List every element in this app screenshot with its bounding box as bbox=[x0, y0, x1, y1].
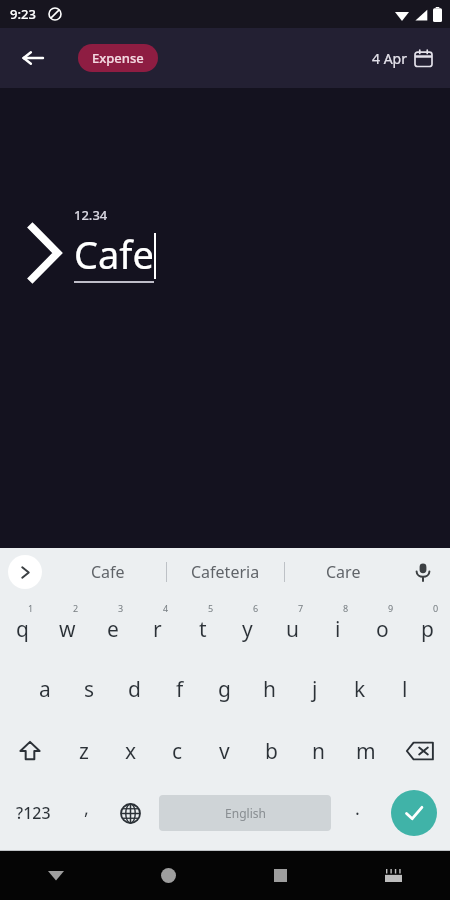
staticText: z bbox=[79, 737, 89, 766]
staticText: 3 bbox=[118, 602, 124, 614]
staticText: a bbox=[39, 675, 51, 704]
staticText: 7 bbox=[298, 602, 304, 614]
button[interactable]: v bbox=[201, 720, 248, 782]
button[interactable]: 4 Apr bbox=[368, 45, 436, 72]
button[interactable]: 2 bbox=[45, 596, 90, 658]
staticText: , bbox=[84, 796, 89, 821]
staticText: v bbox=[219, 737, 230, 766]
button[interactable]: Done bbox=[391, 790, 437, 836]
button[interactable]: Care bbox=[285, 548, 402, 596]
staticText: d bbox=[128, 675, 141, 704]
staticText: t bbox=[199, 615, 207, 644]
staticText: 5 bbox=[208, 602, 214, 614]
staticText: m bbox=[356, 737, 376, 766]
staticText: y bbox=[242, 615, 253, 644]
button[interactable]: Expense bbox=[78, 44, 158, 72]
staticText: g bbox=[218, 675, 231, 704]
button[interactable]: d bbox=[112, 658, 157, 720]
button[interactable]: a bbox=[22, 658, 67, 720]
staticText: k bbox=[354, 675, 366, 704]
staticText: l bbox=[402, 675, 408, 704]
button[interactable]: 4 bbox=[135, 596, 180, 658]
button[interactable]: Comma bbox=[66, 782, 107, 844]
button[interactable]: Voice input bbox=[406, 555, 440, 589]
button[interactable]: 6 bbox=[225, 596, 270, 658]
staticText: Cafe bbox=[91, 561, 125, 583]
staticText: Expense bbox=[92, 49, 144, 67]
button[interactable]: 3 bbox=[90, 596, 135, 658]
staticText: x bbox=[125, 737, 137, 766]
staticText: e bbox=[107, 615, 119, 644]
staticText: j bbox=[312, 675, 318, 704]
staticText: 2 bbox=[73, 602, 79, 614]
staticText: 4 bbox=[163, 602, 169, 614]
staticText: Care bbox=[326, 561, 361, 583]
staticText: o bbox=[376, 615, 389, 644]
button[interactable]: f bbox=[157, 658, 202, 720]
button[interactable]: x bbox=[107, 720, 154, 782]
button[interactable]: j bbox=[292, 658, 337, 720]
button[interactable]: Change language bbox=[107, 782, 153, 844]
staticText: . bbox=[355, 796, 360, 821]
button[interactable]: Cafeteria bbox=[167, 548, 284, 596]
button[interactable]: g bbox=[202, 658, 247, 720]
button[interactable]: 0 bbox=[405, 596, 450, 658]
button[interactable]: Shift bbox=[0, 720, 60, 782]
button[interactable]: 1 bbox=[0, 596, 45, 658]
staticText: w bbox=[59, 615, 76, 644]
button[interactable]: 5 bbox=[180, 596, 225, 658]
button[interactable]: k bbox=[337, 658, 382, 720]
staticText: s bbox=[84, 675, 95, 704]
button[interactable]: n bbox=[295, 720, 342, 782]
button[interactable]: Back bbox=[8, 34, 56, 82]
staticText: 0 bbox=[433, 602, 439, 614]
staticText: 4 Apr bbox=[372, 49, 407, 68]
staticText: 12.34 bbox=[74, 206, 108, 224]
button[interactable]: 8 bbox=[315, 596, 360, 658]
staticText: ?123 bbox=[16, 802, 51, 824]
button[interactable]: Backspace bbox=[389, 720, 450, 782]
button[interactable]: Recent apps bbox=[224, 850, 337, 900]
button[interactable]: Back bbox=[0, 850, 112, 900]
staticText: h bbox=[263, 675, 276, 704]
staticText: u bbox=[286, 615, 299, 644]
button[interactable]: b bbox=[248, 720, 295, 782]
staticText: Cafeteria bbox=[191, 561, 260, 583]
staticText: r bbox=[153, 615, 162, 644]
button[interactable]: s bbox=[67, 658, 112, 720]
button[interactable]: Expand suggestions bbox=[8, 555, 42, 589]
staticText: q bbox=[16, 615, 29, 644]
button[interactable]: Cafe bbox=[50, 548, 166, 596]
button[interactable]: h bbox=[247, 658, 292, 720]
button[interactable]: 9 bbox=[360, 596, 405, 658]
staticText: 9:23 bbox=[10, 5, 36, 23]
staticText: b bbox=[265, 737, 278, 766]
button[interactable]: 7 bbox=[270, 596, 315, 658]
button[interactable]: ?123 bbox=[0, 782, 66, 844]
button[interactable]: c bbox=[154, 720, 201, 782]
staticText: 1 bbox=[28, 602, 34, 614]
button[interactable]: Switch keyboard bbox=[337, 850, 450, 900]
button[interactable]: English bbox=[159, 795, 331, 831]
staticText: English bbox=[225, 805, 266, 821]
staticText: c bbox=[172, 737, 183, 766]
button[interactable]: m bbox=[342, 720, 389, 782]
staticText: p bbox=[421, 615, 434, 644]
staticText: i bbox=[335, 615, 341, 644]
staticText: n bbox=[312, 737, 325, 766]
staticText: 8 bbox=[343, 602, 349, 614]
staticText: 9 bbox=[388, 602, 394, 614]
staticText: f bbox=[176, 675, 184, 704]
button[interactable]: Home bbox=[112, 850, 224, 900]
button[interactable]: z bbox=[60, 720, 107, 782]
button[interactable]: Period bbox=[337, 782, 378, 844]
button[interactable]: l bbox=[382, 658, 427, 720]
staticText: Cafe bbox=[74, 228, 154, 280]
staticText: 6 bbox=[253, 602, 259, 614]
